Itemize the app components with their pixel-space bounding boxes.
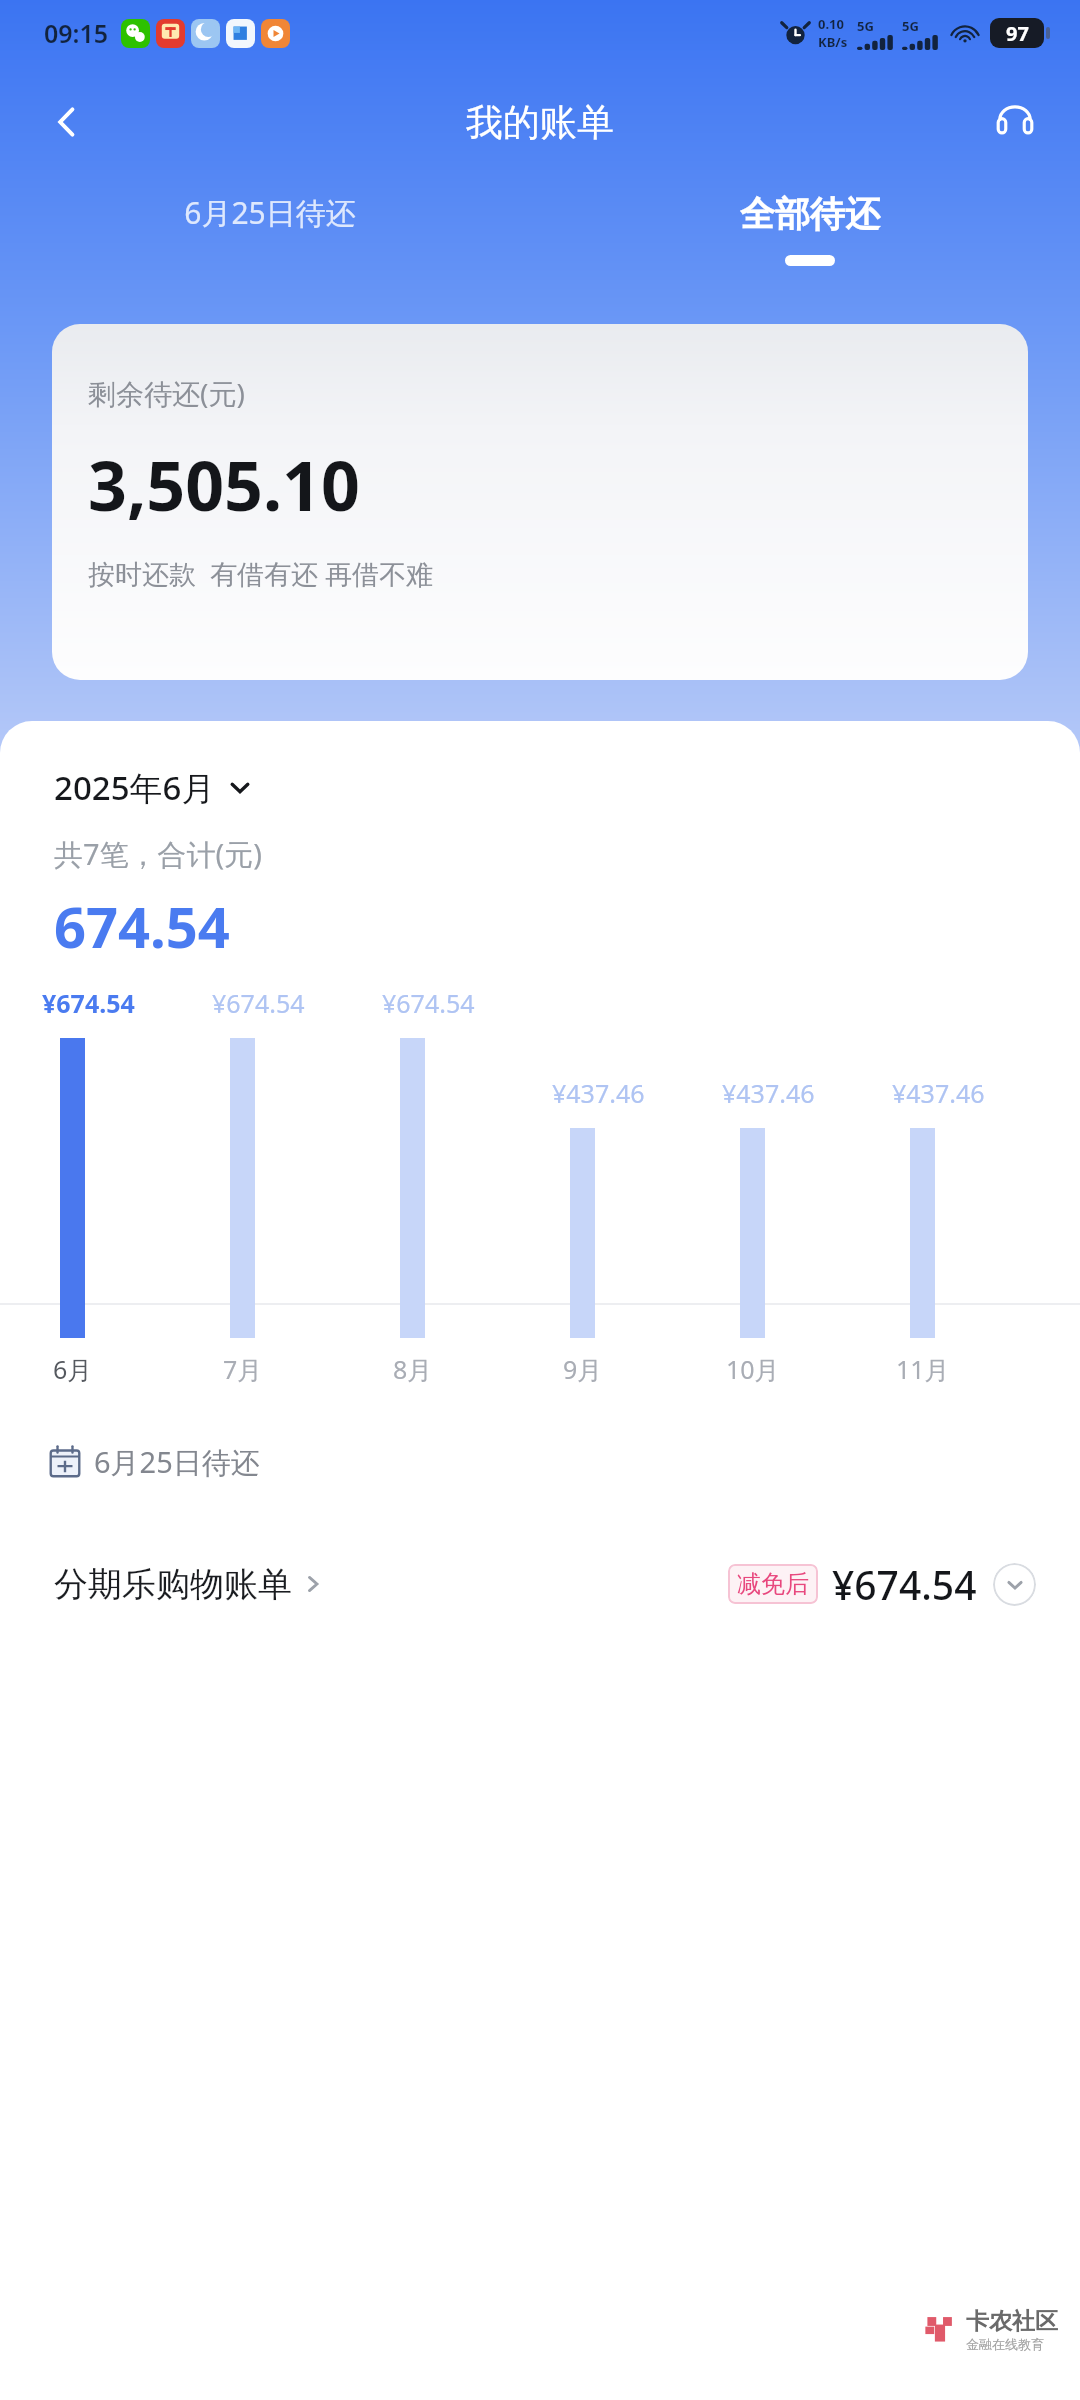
button[interactable]: 2025年6月 — [54, 765, 253, 810]
staticText: 10月 — [726, 1352, 780, 1386]
staticText: 我的账单 — [466, 99, 614, 146]
staticText: 5G — [902, 17, 919, 35]
staticText: 8月 — [393, 1352, 433, 1386]
staticText: ¥437.46 — [552, 1076, 645, 1110]
staticText: ¥437.46 — [722, 1076, 815, 1110]
staticText: 9月 — [563, 1352, 603, 1386]
staticText: 共7笔，合计(元) — [54, 834, 262, 874]
staticText: 全部待还 — [740, 192, 880, 236]
button[interactable]: 客服 — [984, 91, 1046, 153]
staticText: 减免后 — [737, 1569, 809, 1599]
staticText: 金融在线教育 — [966, 2336, 1044, 2352]
staticText: 11月 — [896, 1352, 950, 1386]
staticText: 剩余待还(元) — [88, 374, 245, 412]
staticText: 分期乐购物账单 — [54, 1563, 292, 1606]
staticText: 0.10 — [818, 15, 844, 33]
staticText: 674.54 — [54, 888, 230, 964]
staticText: 09:15 — [44, 16, 109, 50]
button[interactable]: 全部待还 — [540, 178, 1080, 288]
button[interactable]: 6月25日待还 — [0, 178, 540, 288]
staticText: 2025年6月 — [54, 765, 215, 810]
staticText: ¥674.54 — [382, 986, 475, 1020]
staticText: 5G — [857, 17, 874, 35]
staticText: 卡农社区 — [966, 2307, 1058, 2336]
staticText: 6月25日待还 — [94, 1442, 260, 1482]
staticText: ¥674.54 — [212, 986, 305, 1020]
button[interactable]: 返回 — [36, 91, 98, 153]
staticText: 按时还款 有借有还 再借不难 — [88, 555, 434, 592]
staticText: ¥674.54 — [42, 986, 135, 1020]
staticText: ¥674.54 — [832, 1558, 977, 1611]
staticText: ¥437.46 — [892, 1076, 985, 1110]
button[interactable]: 分期乐购物账单 — [0, 1538, 1080, 1630]
staticText: 97 — [1006, 20, 1029, 47]
staticText: 7月 — [223, 1352, 263, 1386]
staticText: 6月 — [53, 1352, 93, 1386]
staticText: 6月25日待还 — [184, 192, 356, 233]
staticText: 3,505.10 — [88, 438, 360, 531]
button[interactable]: 展开 — [993, 1563, 1036, 1606]
staticText: KB/s — [818, 33, 848, 51]
button[interactable]: 剩余待还(元) — [52, 324, 1028, 680]
